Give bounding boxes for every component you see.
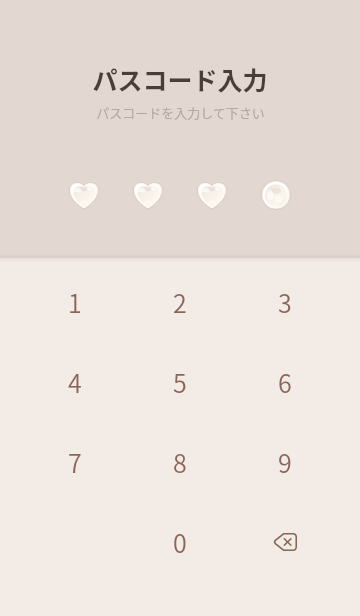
staticText: 5	[173, 364, 187, 400]
button[interactable]: 4	[39, 346, 111, 418]
button[interactable]: 1	[39, 266, 111, 338]
button[interactable]: Delete	[249, 506, 321, 578]
staticText: 8	[173, 444, 187, 480]
staticText: 6	[278, 364, 292, 400]
button[interactable]: 3	[249, 266, 321, 338]
staticText: 3	[278, 284, 292, 320]
staticText: 1	[68, 284, 82, 320]
staticText: 9	[278, 444, 292, 480]
button[interactable]: 6	[249, 346, 321, 418]
button[interactable]: 8	[144, 426, 216, 498]
button[interactable]: 0	[144, 506, 216, 578]
staticText: 7	[68, 444, 82, 480]
staticText: パスコードを入力して下さい	[96, 103, 265, 122]
button[interactable]: 5	[144, 346, 216, 418]
staticText: 0	[173, 524, 187, 560]
staticText: 4	[68, 364, 82, 400]
staticText: 2	[173, 284, 187, 320]
button[interactable]: 2	[144, 266, 216, 338]
staticText: パスコード入力	[92, 61, 268, 97]
button[interactable]: 7	[39, 426, 111, 498]
button[interactable]: 9	[249, 426, 321, 498]
